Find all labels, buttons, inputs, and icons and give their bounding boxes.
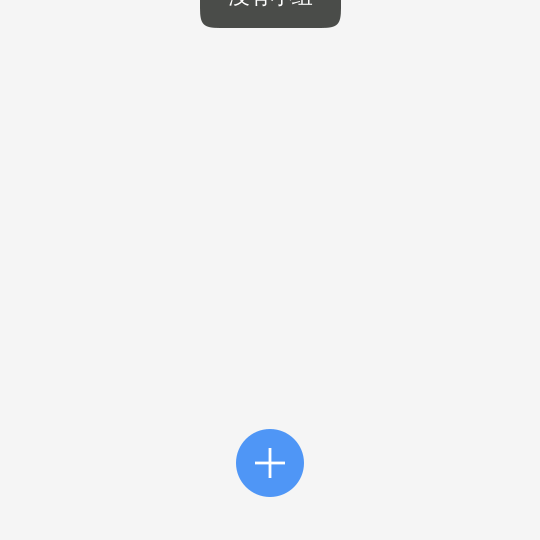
- button[interactable]: 新建小组: [236, 429, 304, 497]
- staticText: 没有小组: [228, 0, 312, 10]
